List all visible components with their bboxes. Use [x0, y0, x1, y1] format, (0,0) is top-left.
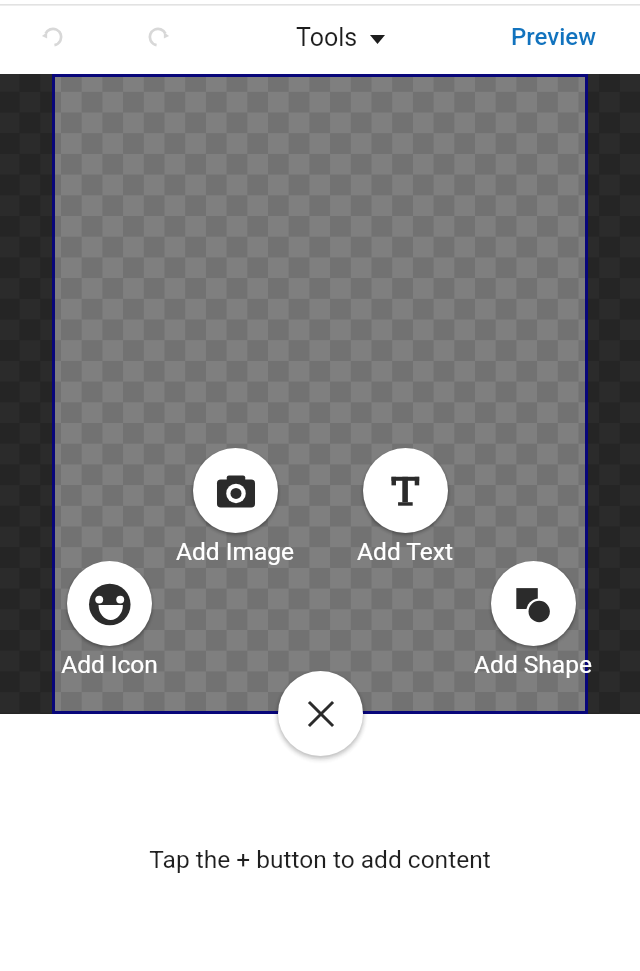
button[interactable]: Add Shape [393, 561, 640, 679]
button[interactable]: Add Image [95, 448, 375, 566]
staticText: Preview [511, 23, 596, 51]
button[interactable]: Undo [20, 9, 86, 61]
button[interactable]: Preview [511, 11, 596, 63]
button[interactable]: Redo [125, 9, 191, 61]
button[interactable]: Add Text [265, 448, 545, 566]
staticText: Add Shape [474, 650, 592, 679]
button[interactable]: Tools [296, 11, 373, 63]
staticText: Add Image [176, 537, 294, 566]
button[interactable]: Close add menu [278, 671, 363, 756]
staticText: Tools [296, 23, 358, 52]
staticText: Add Icon [61, 650, 158, 679]
button[interactable]: Add Icon [0, 561, 249, 679]
staticText: Add Text [357, 537, 453, 566]
staticText: Tap the + button to add content [149, 845, 491, 874]
